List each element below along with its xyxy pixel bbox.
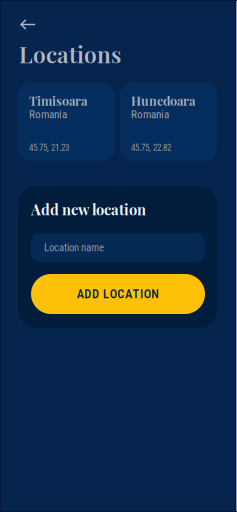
staticText: 45.75, 22.82 bbox=[131, 142, 171, 153]
staticText: Location name bbox=[44, 241, 104, 254]
button[interactable]: Hunedoara bbox=[120, 82, 217, 161]
button[interactable]: Location name bbox=[31, 233, 205, 262]
staticText: Add new location bbox=[31, 199, 146, 219]
button[interactable]: Back bbox=[0, 0, 48, 39]
staticText: Romania bbox=[29, 108, 67, 121]
staticText: 45.75, 21.23 bbox=[29, 142, 69, 153]
staticText: Timisoara bbox=[29, 92, 87, 109]
staticText: Hunedoara bbox=[131, 92, 195, 109]
button[interactable]: Timisoara bbox=[18, 82, 115, 161]
staticText: Romania bbox=[131, 108, 169, 121]
staticText: Locations bbox=[19, 39, 121, 69]
button[interactable]: ADD LOCATION bbox=[31, 274, 205, 314]
staticText: ADD LOCATION bbox=[77, 287, 159, 301]
